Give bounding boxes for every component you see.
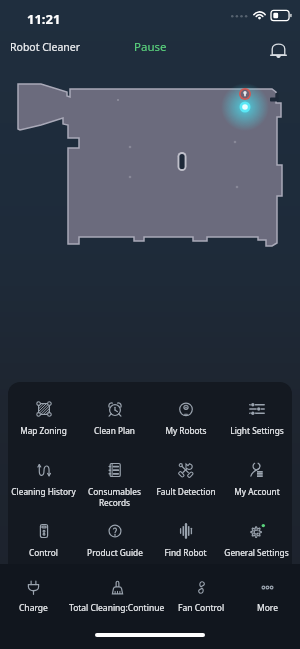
- button[interactable]: Charge: [17, 579, 50, 614]
- button[interactable]: Notifications: [264, 35, 292, 63]
- staticText: Charge: [19, 602, 48, 614]
- staticText: My Account: [234, 486, 280, 497]
- button[interactable]: General Settings: [222, 522, 291, 558]
- staticText: My Robots: [165, 425, 207, 436]
- button[interactable]: Control: [9, 522, 78, 558]
- staticText: More: [257, 602, 278, 614]
- staticText: Fault Detection: [156, 486, 216, 497]
- button[interactable]: Find Robot: [151, 522, 220, 558]
- staticText: Clean Plan: [94, 425, 135, 436]
- staticText: Consumables Records: [88, 486, 141, 508]
- staticText: Cleaning History: [11, 486, 76, 497]
- button[interactable]: Fan Control: [176, 579, 227, 614]
- staticText: 11:21: [27, 10, 61, 28]
- staticText: Map Zoning: [20, 425, 67, 436]
- button[interactable]: More: [255, 579, 280, 614]
- staticText: Product Guide: [87, 547, 143, 558]
- staticText: Total Cleaning:Continue: [69, 602, 165, 614]
- staticText: Find Robot: [164, 547, 207, 558]
- button[interactable]: Map Zoning: [9, 400, 78, 436]
- button[interactable]: My Robots: [151, 400, 220, 436]
- button[interactable]: Cleaning History: [9, 461, 78, 497]
- button[interactable]: Total Cleaning:Continue: [67, 579, 167, 614]
- button[interactable]: Product Guide: [80, 522, 149, 558]
- button[interactable]: Fault Detection: [151, 461, 220, 497]
- staticText: Control: [29, 547, 58, 558]
- button[interactable]: Light Settings: [222, 400, 291, 436]
- staticText: Light Settings: [230, 425, 284, 436]
- button[interactable]: Pause: [134, 39, 167, 55]
- staticText: General Settings: [224, 547, 289, 558]
- button[interactable]: My Account: [222, 461, 291, 497]
- staticText: Fan Control: [178, 602, 225, 614]
- button[interactable]: Clean Plan: [80, 400, 149, 436]
- button[interactable]: Robot Cleaner: [10, 40, 81, 54]
- button[interactable]: Consumables Records: [80, 461, 149, 508]
